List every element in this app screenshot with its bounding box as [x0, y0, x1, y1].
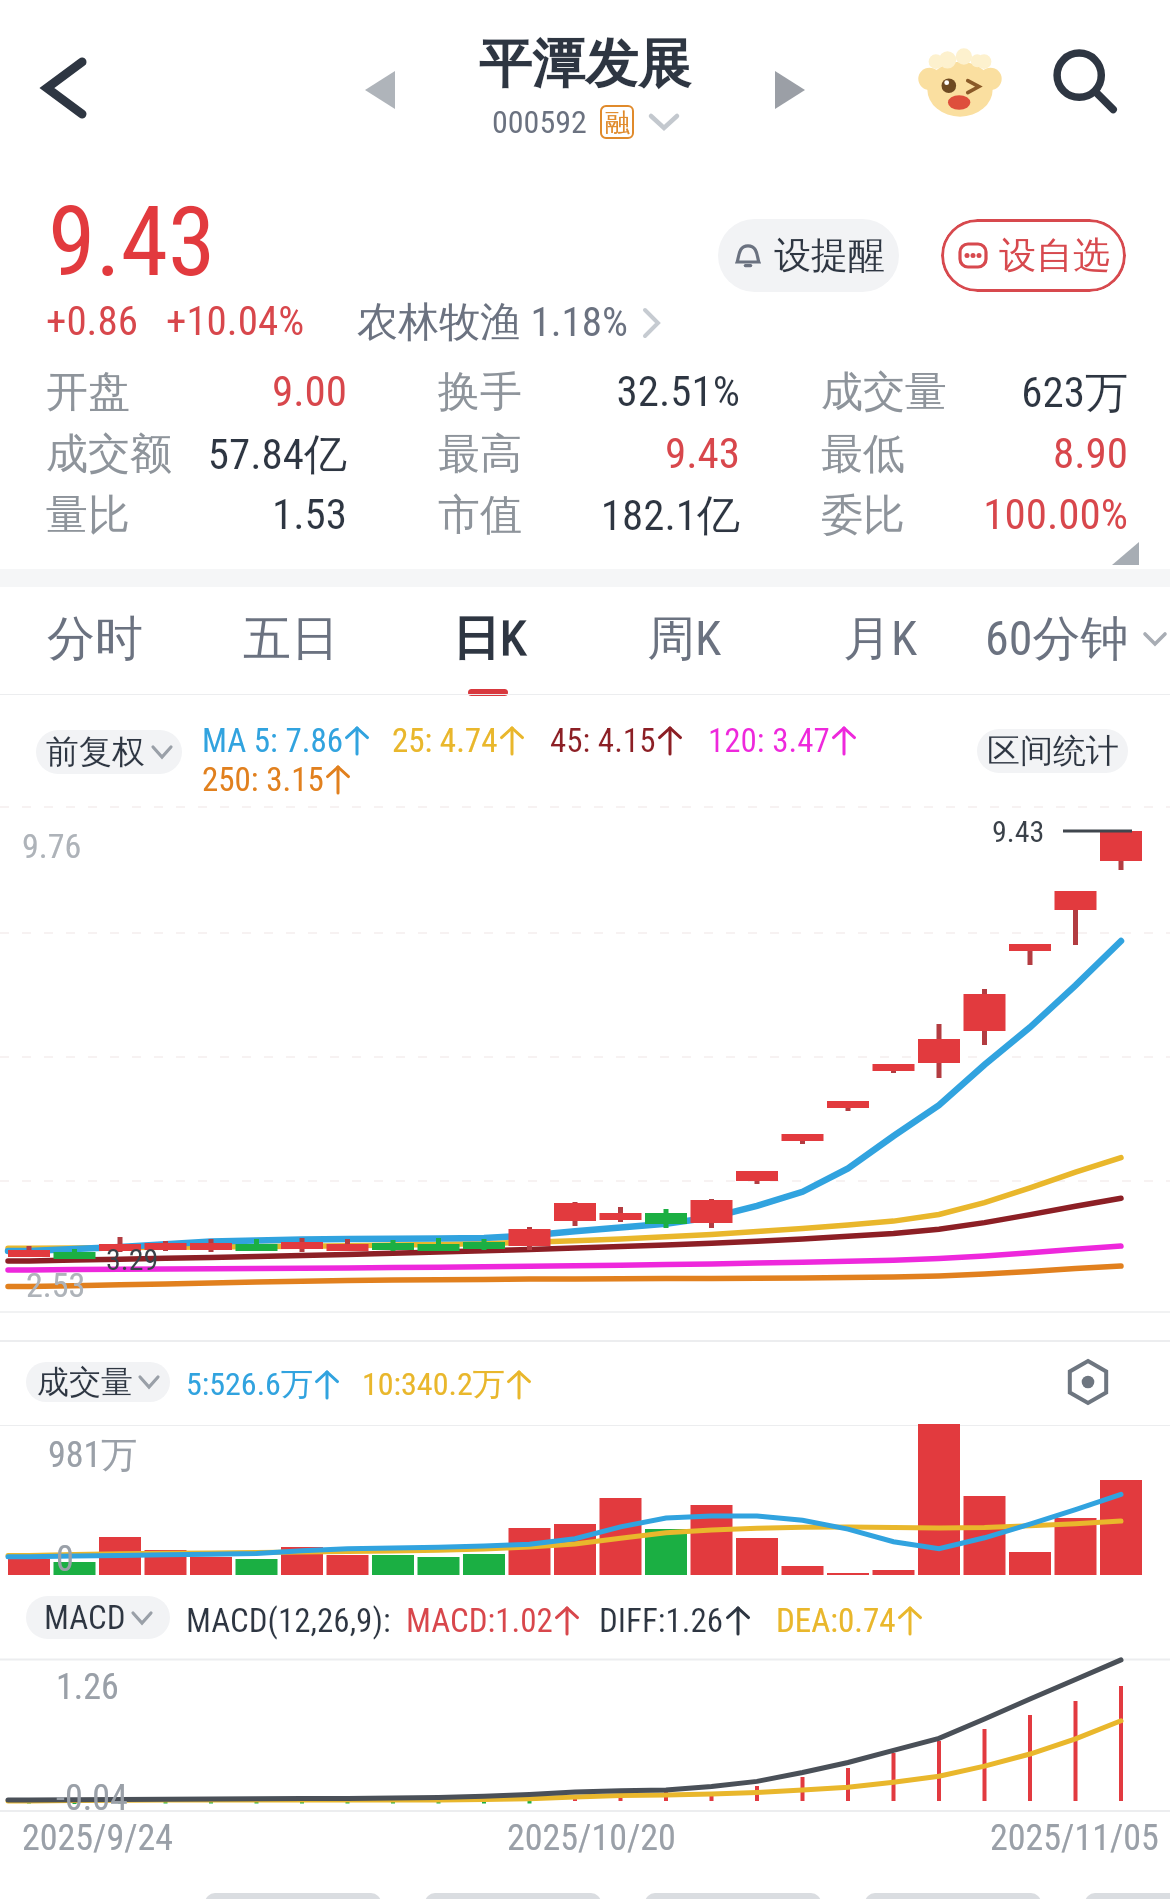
- button[interactable]: 五日: [194, 585, 388, 693]
- staticText: MA 5: 7.86: [202, 721, 343, 760]
- staticText: 1.26: [56, 1666, 119, 1708]
- staticText: 9.43: [518, 428, 740, 478]
- staticText: -0.04: [56, 1777, 128, 1819]
- button[interactable]: 月K: [783, 585, 977, 693]
- button[interactable]: Previous stock: [340, 50, 420, 130]
- staticText: 分时: [47, 609, 143, 669]
- staticText: 平潭发展: [479, 31, 691, 98]
- staticText: 3.29: [106, 1242, 159, 1277]
- button[interactable]: 日K: [392, 585, 586, 693]
- staticText: 32.51%: [518, 366, 740, 416]
- staticText: 182.1亿: [518, 489, 740, 543]
- button[interactable]: 设自选: [941, 219, 1126, 292]
- staticText: 60分钟: [985, 609, 1129, 669]
- button[interactable]: 前复权: [36, 730, 182, 774]
- staticText: DEA:0.74: [776, 1601, 896, 1640]
- staticText: 月K: [843, 609, 918, 669]
- staticText: 成交量: [821, 366, 947, 419]
- staticText: 设自选: [999, 232, 1110, 279]
- staticText: 100.00%: [901, 489, 1128, 539]
- staticText: 000592: [492, 103, 587, 141]
- staticText: 25: 4.74: [392, 721, 498, 760]
- staticText: 成交额: [46, 428, 172, 481]
- staticText: 9.43: [48, 186, 216, 299]
- button[interactable]: 周K: [587, 585, 781, 693]
- staticText: 57.84亿: [126, 428, 347, 482]
- button[interactable]: [425, 1893, 601, 1899]
- staticText: +10.04%: [166, 297, 305, 345]
- button[interactable]: [645, 1893, 821, 1899]
- button[interactable]: Mascot: [912, 36, 1008, 132]
- button[interactable]: Indicator settings: [1058, 1352, 1118, 1412]
- button[interactable]: Search: [1038, 36, 1134, 132]
- button[interactable]: [865, 1893, 1041, 1899]
- button[interactable]: 设提醒: [718, 219, 899, 292]
- button[interactable]: 农林牧渔 1.18%: [357, 297, 660, 349]
- staticText: 9.00: [126, 366, 347, 416]
- staticText: 区间统计: [987, 730, 1119, 772]
- staticText: 250: 3.15: [202, 760, 324, 799]
- staticText: 8.90: [901, 428, 1128, 478]
- staticText: MACD(12,26,9):: [186, 1601, 391, 1640]
- staticText: 日K: [452, 609, 527, 669]
- staticText: MACD:1.02: [406, 1601, 553, 1640]
- button[interactable]: Back: [18, 42, 110, 134]
- staticText: 2025/11/05: [990, 1817, 1159, 1859]
- staticText: 五日: [243, 609, 339, 669]
- staticText: 2.53: [26, 1265, 86, 1305]
- staticText: MACD: [44, 1598, 126, 1637]
- button[interactable]: [205, 1893, 381, 1899]
- staticText: 农林牧渔 1.18%: [357, 297, 628, 349]
- staticText: 2025/9/24: [22, 1817, 174, 1859]
- button[interactable]: MACD: [26, 1596, 170, 1639]
- staticText: 1.53: [126, 489, 347, 539]
- staticText: +0.86: [46, 297, 138, 345]
- staticText: 最高: [438, 428, 522, 481]
- staticText: 981万: [48, 1432, 138, 1477]
- staticText: 量比: [46, 489, 130, 542]
- staticText: 2025/10/20: [507, 1817, 676, 1859]
- staticText: 120: 3.47: [708, 721, 830, 760]
- staticText: 委比: [821, 489, 905, 542]
- staticText: 开盘: [46, 366, 130, 419]
- button[interactable]: 分时: [0, 585, 192, 693]
- button[interactable]: 成交量: [26, 1362, 170, 1402]
- staticText: 9.76: [22, 826, 82, 866]
- staticText: 最低: [821, 428, 905, 481]
- staticText: 0: [56, 1538, 74, 1580]
- button[interactable]: [1085, 1893, 1170, 1899]
- staticText: 9.43: [992, 814, 1045, 849]
- staticText: DIFF:1.26: [599, 1601, 724, 1640]
- staticText: 融: [605, 107, 630, 138]
- staticText: 10:340.2万: [362, 1364, 505, 1404]
- staticText: 623万: [901, 366, 1128, 420]
- staticText: 设提醒: [774, 232, 885, 279]
- staticText: 市值: [438, 489, 522, 542]
- staticText: 45: 4.15: [550, 721, 656, 760]
- button[interactable]: Expand quote panel: [1100, 532, 1150, 574]
- staticText: 周K: [647, 609, 722, 669]
- staticText: 换手: [438, 366, 522, 419]
- staticText: 5:526.6万: [186, 1364, 313, 1404]
- staticText: 前复权: [46, 731, 145, 773]
- button[interactable]: 60分钟: [985, 585, 1170, 693]
- button[interactable]: Next stock: [750, 50, 830, 130]
- button[interactable]: 区间统计: [977, 729, 1128, 773]
- staticText: 成交量: [37, 1362, 133, 1402]
